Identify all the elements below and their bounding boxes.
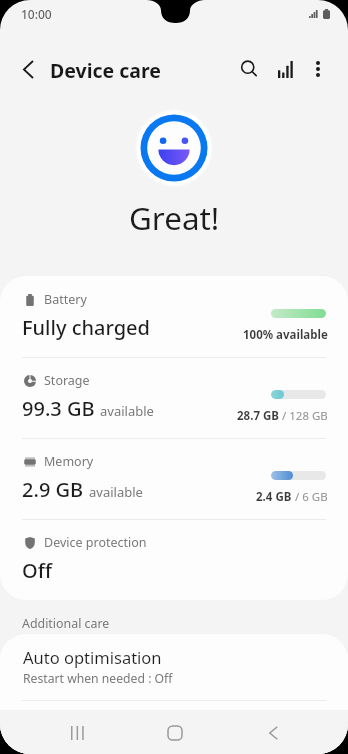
staticText: Restart when needed : Off xyxy=(23,670,173,687)
staticText: 10:00 xyxy=(21,6,52,22)
staticText: Memory xyxy=(44,453,94,470)
button[interactable]: Storage xyxy=(0,357,348,438)
staticText: 28.7 GB xyxy=(237,408,279,424)
staticText: Off xyxy=(22,557,52,584)
button[interactable]: Home xyxy=(149,711,201,754)
staticText: Additional care xyxy=(22,615,110,632)
staticText: available xyxy=(89,483,143,501)
button[interactable]: Memory xyxy=(0,438,348,519)
button[interactable]: Recent apps xyxy=(52,711,104,754)
staticText: Device care xyxy=(50,57,161,84)
button[interactable]: Device protection xyxy=(0,519,348,600)
button[interactable]: Back xyxy=(247,711,299,754)
button[interactable]: Usage statistics xyxy=(265,48,306,89)
staticText: Great! xyxy=(129,196,220,239)
staticText: Fully charged xyxy=(22,314,150,341)
button[interactable]: Battery xyxy=(0,276,348,357)
staticText: 100% available xyxy=(243,327,328,343)
button[interactable]: Auto optimisation xyxy=(0,634,348,700)
staticText: 99.3 GB xyxy=(22,395,95,422)
staticText: / 6 GB xyxy=(292,489,328,505)
button[interactable]: Search xyxy=(228,48,269,89)
staticText: / 128 GB xyxy=(279,408,328,424)
staticText: 2.9 GB xyxy=(22,476,84,503)
staticText: Storage xyxy=(44,372,90,389)
staticText: available xyxy=(100,402,154,420)
button[interactable]: More options xyxy=(297,48,338,89)
staticText: Device protection xyxy=(44,534,147,551)
staticText: 2.4 GB xyxy=(256,489,292,505)
staticText: Battery xyxy=(44,291,87,308)
staticText: Auto optimisation xyxy=(23,646,162,668)
button[interactable]: Navigate up xyxy=(6,47,50,91)
